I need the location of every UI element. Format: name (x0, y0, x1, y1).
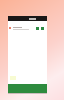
button[interactable]: Toolbar (8, 16, 47, 21)
button[interactable] (8, 25, 47, 31)
